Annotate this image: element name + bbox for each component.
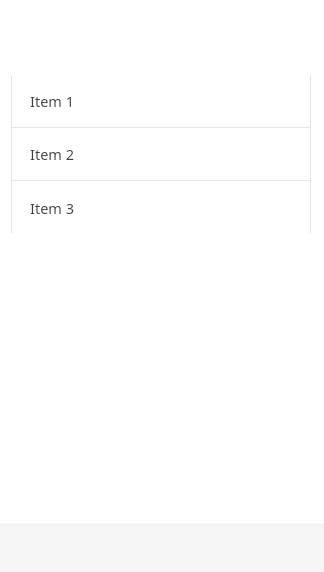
button[interactable]: Item 2 (11, 128, 311, 180)
button[interactable]: Item 3 (11, 181, 311, 234)
button[interactable]: Item 1 (11, 75, 311, 127)
staticText: Item 1 (30, 91, 74, 111)
staticText: Item 2 (30, 144, 74, 164)
staticText: Item 3 (30, 198, 74, 218)
